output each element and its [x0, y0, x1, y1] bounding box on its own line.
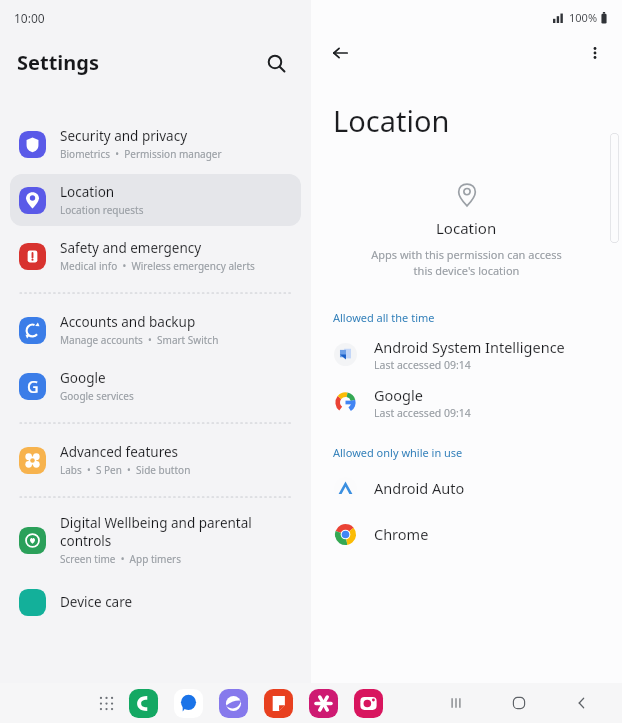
staticText: Allowed all the time [333, 310, 435, 325]
staticText: Medical info • Wireless emergency alerts [60, 259, 255, 273]
staticText: controls [60, 532, 112, 550]
staticText: Digital Wellbeing and parental [60, 514, 252, 532]
button[interactable]: Home [502, 686, 536, 720]
button[interactable]: Phone [128, 688, 159, 719]
button[interactable]: Notes [263, 688, 294, 719]
button[interactable]: Camera [353, 688, 384, 719]
staticText: Android System Intelligence [374, 337, 565, 357]
staticText: Location requests [60, 203, 144, 217]
staticText: Biometrics • Permission manager [60, 147, 222, 161]
button[interactable]: Device care [10, 576, 301, 628]
button[interactable]: Security and privacy [10, 118, 301, 170]
staticText: Google [60, 369, 106, 387]
button[interactable]: Internet [218, 688, 249, 719]
staticText: Safety and emergency [60, 239, 202, 257]
button[interactable]: Search [259, 46, 293, 80]
button[interactable]: Recents [439, 686, 473, 720]
staticText: 100% [569, 10, 598, 25]
staticText: Advanced features [60, 443, 179, 461]
staticText: Location [333, 101, 450, 140]
button[interactable]: Health [308, 688, 339, 719]
button[interactable]: Advanced features [10, 434, 301, 486]
button[interactable]: Back [565, 686, 599, 720]
staticText: Manage accounts • Smart Switch [60, 333, 219, 347]
staticText: Location [436, 218, 497, 238]
button[interactable]: Android Auto [311, 465, 622, 511]
staticText: G [27, 376, 39, 398]
staticText: 10:00 [14, 10, 45, 26]
button[interactable]: Apps [91, 688, 121, 718]
staticText: Last accessed 09:14 [374, 358, 471, 372]
button[interactable]: Google [311, 378, 622, 426]
staticText: Location [60, 183, 115, 201]
button[interactable]: Accounts and backup [10, 304, 301, 356]
staticText: Security and privacy [60, 127, 188, 145]
staticText: Android Auto [374, 478, 465, 498]
staticText: Accounts and backup [60, 313, 196, 331]
button[interactable]: More options [580, 38, 610, 68]
staticText: Last accessed 09:14 [374, 406, 471, 420]
staticText: Screen time • App timers [60, 552, 182, 566]
button[interactable]: G [10, 360, 301, 412]
button[interactable]: Chrome [311, 511, 622, 557]
staticText: Chrome [374, 524, 429, 544]
staticText: Settings [17, 49, 99, 76]
button[interactable]: Digital Wellbeing and parental [10, 508, 301, 572]
button[interactable]: Android System Intelligence [311, 330, 622, 378]
staticText: Apps with this permission can access thi… [371, 247, 562, 279]
button[interactable]: Safety and emergency [10, 230, 301, 282]
button[interactable]: Back [325, 38, 355, 68]
staticText: Labs • S Pen • Side button [60, 463, 191, 477]
staticText: Allowed only while in use [333, 445, 463, 460]
staticText: Google [374, 385, 423, 405]
staticText: Device care [60, 593, 133, 611]
button[interactable]: Messages [173, 688, 204, 719]
staticText: Google services [60, 389, 134, 403]
button[interactable]: Location [10, 174, 301, 226]
